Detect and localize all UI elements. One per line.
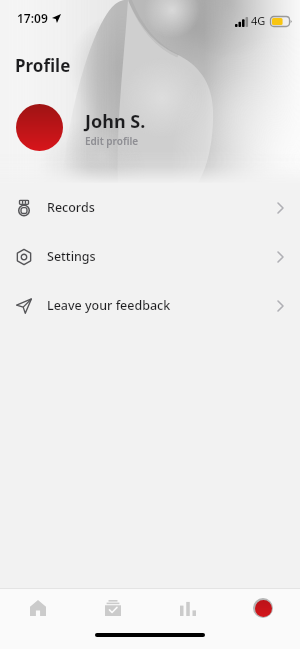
staticText: 17:09 — [17, 10, 48, 26]
button[interactable]: Leave your feedback — [0, 281, 300, 330]
button[interactable]: Profile — [248, 593, 278, 623]
staticText: 4G — [251, 13, 266, 28]
button[interactable]: John S. — [85, 109, 146, 148]
staticText: Profile — [15, 54, 71, 77]
staticText: Settings — [47, 248, 96, 265]
button[interactable]: Statistics — [171, 593, 205, 623]
staticText: Edit profile — [85, 134, 139, 148]
staticText: John S. — [85, 109, 146, 134]
staticText: Leave your feedback — [47, 297, 171, 314]
button[interactable]: Home — [21, 593, 55, 623]
button[interactable]: Settings — [0, 232, 300, 281]
button[interactable]: Records — [0, 183, 300, 232]
button[interactable]: Workouts — [96, 593, 130, 623]
staticText: Records — [47, 199, 95, 216]
